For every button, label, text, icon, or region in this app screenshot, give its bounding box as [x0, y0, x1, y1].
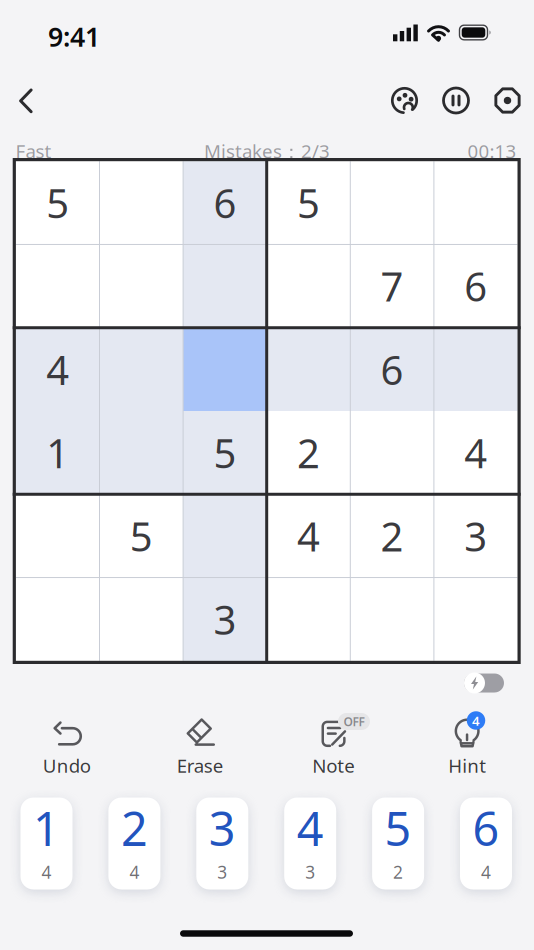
staticText: 3	[464, 509, 487, 562]
staticText: 4	[129, 860, 139, 883]
staticText: 6	[381, 343, 404, 396]
button[interactable]: Erase	[140, 701, 260, 779]
staticText: 00:13	[467, 139, 516, 163]
staticText: 5	[130, 509, 153, 562]
staticText: Erase	[177, 753, 224, 778]
staticText: Fast	[15, 139, 51, 163]
staticText: 1	[33, 797, 60, 859]
staticText: 2	[297, 426, 320, 479]
staticText: 4	[46, 343, 69, 396]
button[interactable]: Sudoku board	[13, 158, 521, 664]
button[interactable]: 6	[460, 797, 512, 889]
staticText: 4	[297, 509, 320, 562]
staticText: Undo	[43, 753, 91, 778]
staticText: 6	[213, 176, 236, 229]
staticText: 6	[464, 259, 487, 313]
staticText: 7	[381, 259, 404, 313]
button[interactable]: Fast mode	[462, 671, 508, 695]
staticText: 3	[217, 860, 227, 883]
staticText: 3	[213, 593, 236, 646]
staticText: Mistakes：2/3	[204, 139, 330, 163]
staticText: Note	[312, 753, 355, 778]
staticText: 2	[121, 797, 148, 859]
button[interactable]: Pause	[439, 83, 473, 117]
button[interactable]: Theme	[387, 83, 421, 117]
staticText: 5	[385, 797, 412, 859]
staticText: 9:41	[48, 19, 100, 54]
button[interactable]: 3	[196, 797, 248, 889]
staticText: 5	[213, 426, 236, 479]
button[interactable]: 5	[372, 797, 424, 889]
staticText: 4	[481, 860, 491, 883]
staticText: 4	[464, 426, 487, 479]
staticText: 6	[472, 797, 499, 859]
staticText: 5	[297, 176, 320, 229]
staticText: 2	[381, 509, 404, 562]
staticText: 4	[41, 860, 51, 883]
staticText: OFF	[343, 713, 364, 729]
staticText: 3	[305, 860, 315, 883]
staticText: 1	[46, 426, 69, 479]
staticText: 4	[297, 797, 324, 859]
button[interactable]: Back	[6, 81, 46, 121]
button[interactable]: 4	[407, 701, 527, 779]
button[interactable]: 2	[108, 797, 160, 889]
staticText: Hint	[448, 753, 486, 778]
staticText: 2	[393, 860, 403, 883]
button[interactable]: Settings	[490, 83, 524, 117]
staticText: 3	[209, 797, 236, 859]
button[interactable]: 4	[284, 797, 336, 889]
button[interactable]: Undo	[7, 701, 127, 779]
staticText: 5	[46, 176, 69, 229]
button[interactable]: 1	[20, 797, 72, 889]
staticText: 4	[472, 712, 480, 729]
button[interactable]: OFF	[274, 701, 394, 779]
